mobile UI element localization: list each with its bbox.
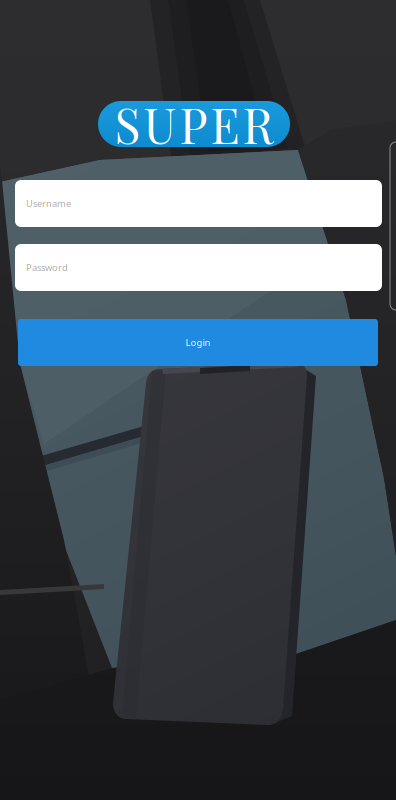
staticText: Password (26, 261, 68, 274)
staticText: Login (185, 336, 210, 349)
staticText: Username (26, 197, 71, 210)
button[interactable]: Login (18, 319, 378, 366)
button[interactable]: Password (15, 244, 382, 291)
button[interactable]: Username (15, 180, 382, 227)
staticText: SUPER (114, 92, 273, 156)
